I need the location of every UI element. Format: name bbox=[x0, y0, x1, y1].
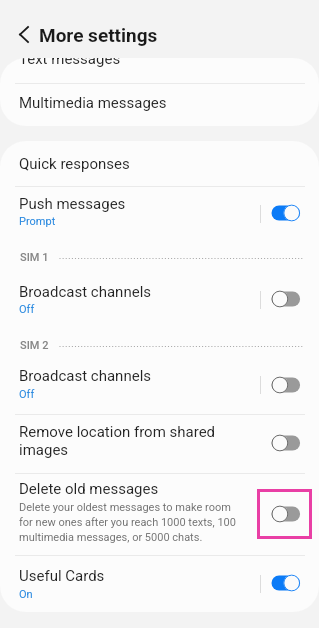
staticText: Push messages bbox=[19, 195, 126, 213]
button[interactable]: Switch off bbox=[271, 434, 301, 452]
button[interactable]: Switch off bbox=[271, 376, 301, 394]
button[interactable] bbox=[0, 555, 319, 612]
staticText: On bbox=[19, 588, 33, 601]
staticText: Useful Cards bbox=[19, 567, 105, 585]
button[interactable] bbox=[0, 186, 319, 241]
button[interactable]: Switch off bbox=[271, 290, 301, 308]
button[interactable] bbox=[0, 473, 319, 555]
button[interactable]: Navigate up bbox=[8, 18, 40, 50]
button[interactable] bbox=[0, 141, 319, 186]
staticText: Delete old messages bbox=[19, 480, 159, 498]
staticText: Quick responses bbox=[19, 155, 130, 173]
button[interactable]: Switch on bbox=[271, 204, 301, 222]
staticText: Multimedia messages bbox=[19, 94, 167, 112]
staticText: Remove location from shared images bbox=[19, 423, 216, 459]
button[interactable]: Switch off bbox=[271, 505, 301, 523]
staticText: Broadcast channels bbox=[19, 283, 152, 301]
button[interactable] bbox=[0, 276, 319, 330]
staticText: Broadcast channels bbox=[19, 367, 152, 385]
button[interactable] bbox=[0, 363, 319, 414]
staticText: Text messages bbox=[19, 58, 121, 68]
staticText: Off bbox=[19, 303, 35, 316]
button[interactable]: Multimedia messages bbox=[0, 84, 319, 126]
staticText: Prompt bbox=[19, 215, 56, 228]
staticText: Delete your oldest messages to make room… bbox=[19, 501, 236, 543]
staticText: SIM 1 bbox=[20, 251, 49, 264]
staticText: SIM 2 bbox=[20, 339, 49, 352]
staticText: More settings bbox=[39, 24, 158, 46]
button[interactable]: Switch on bbox=[271, 574, 301, 592]
button[interactable]: Text messages bbox=[0, 58, 319, 83]
staticText: Off bbox=[19, 388, 35, 401]
button[interactable] bbox=[0, 414, 319, 473]
